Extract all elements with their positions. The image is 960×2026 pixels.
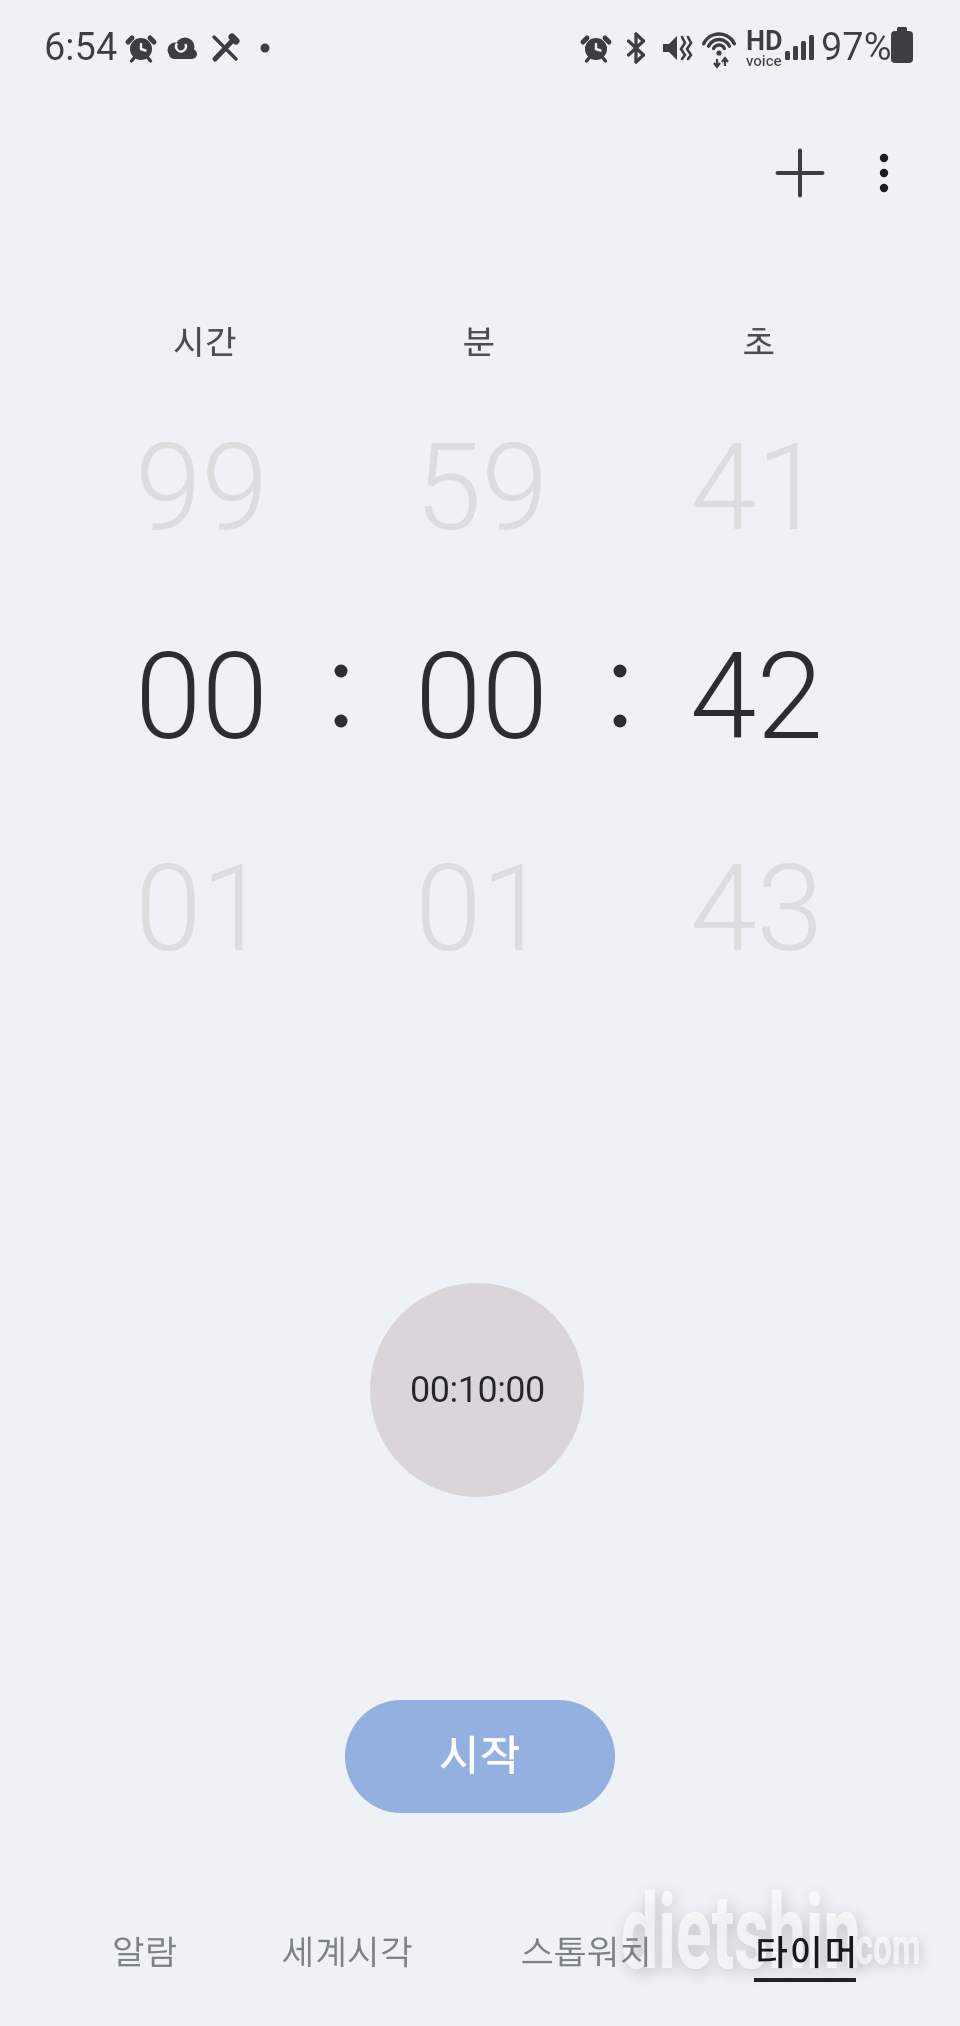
staticText: 초	[743, 328, 776, 361]
staticText: 01	[415, 839, 549, 980]
button[interactable]: 알람	[60, 1906, 230, 2002]
button[interactable]: 00	[72, 612, 332, 782]
button[interactable]	[762, 135, 838, 211]
staticText: 43	[690, 839, 824, 980]
staticText: 세계시각	[282, 1937, 413, 1971]
staticText: 6:54	[44, 25, 118, 70]
button[interactable]: 00	[352, 612, 612, 782]
staticText: 분	[463, 328, 496, 361]
staticText: 59	[415, 418, 549, 559]
staticText: 41	[690, 418, 824, 559]
button[interactable]: 시작	[345, 1700, 615, 1813]
staticText: HD	[746, 25, 783, 57]
staticText: .com	[846, 1916, 921, 1977]
staticText: voice	[746, 52, 782, 70]
button[interactable]	[852, 135, 916, 211]
staticText: 97%	[821, 25, 892, 70]
button[interactable]: 42	[627, 612, 887, 782]
staticText: 스톱워치	[521, 1937, 652, 1971]
button[interactable]: 세계시각	[247, 1906, 447, 2002]
staticText: dietshin	[621, 1872, 861, 1994]
staticText: 시간	[173, 328, 238, 361]
staticText: 42	[690, 627, 824, 768]
staticText: 00	[135, 627, 269, 768]
button[interactable]: 00:10:00	[370, 1283, 584, 1497]
staticText: 알람	[112, 1937, 178, 1971]
staticText: 00:10:00	[410, 1369, 545, 1411]
button[interactable]: 타이머	[721, 1906, 891, 2002]
staticText: 01	[135, 839, 269, 980]
staticText: 00	[415, 627, 549, 768]
staticText: 타이머	[754, 1937, 858, 1972]
staticText: 시작	[439, 1736, 521, 1778]
button[interactable]: 스톱워치	[486, 1906, 686, 2002]
staticText: 99	[135, 418, 269, 559]
